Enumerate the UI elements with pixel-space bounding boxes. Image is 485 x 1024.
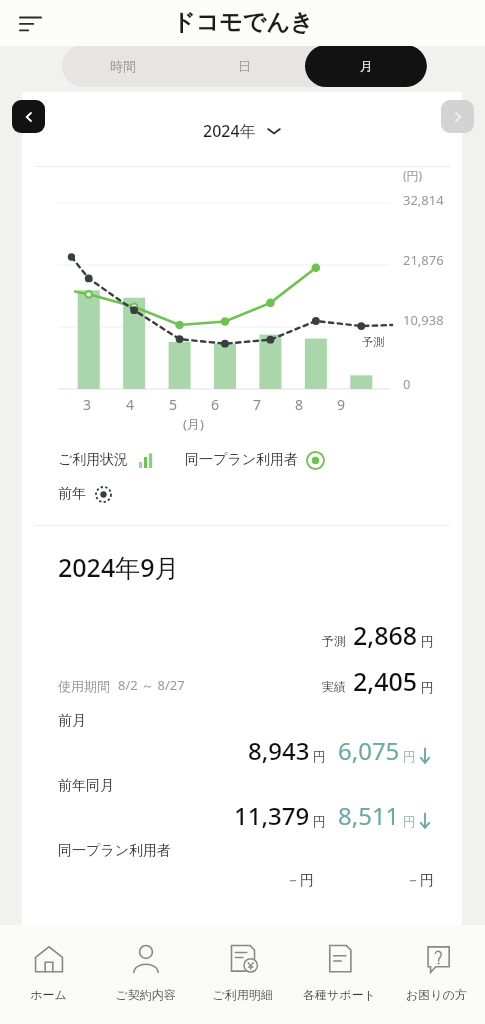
staticText: 4 xyxy=(126,395,135,414)
staticText: 前月 xyxy=(58,712,86,730)
staticText: －円 xyxy=(286,872,314,890)
staticText: －円 xyxy=(406,872,434,890)
staticText: 円 xyxy=(313,748,326,764)
button[interactable]: ご利用明細 xyxy=(194,925,291,1024)
staticText: 9 xyxy=(337,395,346,414)
button[interactable]: 2024年 xyxy=(22,120,462,142)
button[interactable]: ご契約内容 xyxy=(97,925,194,1024)
staticText: 32,814 xyxy=(403,191,444,209)
staticText: 3 xyxy=(83,395,92,414)
button[interactable]: 月 xyxy=(305,45,427,87)
staticText: 予測 xyxy=(362,335,384,349)
staticText: 8,943 xyxy=(248,734,310,767)
button[interactable]: 日 xyxy=(183,45,305,87)
staticText: 5 xyxy=(169,395,178,414)
staticText: 円 xyxy=(403,748,416,764)
staticText: ホーム xyxy=(30,987,67,1002)
staticText: 円 xyxy=(313,813,326,829)
staticText: 実績 xyxy=(322,679,346,694)
staticText: 円 xyxy=(403,813,416,829)
staticText: 時間 xyxy=(110,58,136,74)
staticText: ご契約内容 xyxy=(115,987,176,1002)
staticText: 8,511 xyxy=(338,799,400,832)
staticText: 6,075 xyxy=(338,734,400,767)
staticText: 同一プラン利用者 xyxy=(185,451,298,469)
staticText: 2,405 xyxy=(353,664,418,698)
staticText: 日 xyxy=(238,58,251,74)
staticText: 7 xyxy=(253,395,262,414)
staticText: (月) xyxy=(183,415,204,433)
staticText: 使用期間 xyxy=(58,678,110,694)
staticText: ドコモでんき xyxy=(172,8,314,37)
button[interactable]: 前年へ xyxy=(12,100,45,133)
staticText: 前年 xyxy=(58,485,86,503)
staticText: 8 xyxy=(295,395,304,414)
staticText: 各種サポート xyxy=(303,987,376,1002)
staticText: 2024年9月 xyxy=(58,550,180,584)
staticText: 前年同月 xyxy=(58,777,114,795)
staticText: 11,379 xyxy=(234,799,310,832)
button[interactable]: メニュー xyxy=(14,7,46,39)
staticText: 2024年 xyxy=(203,120,256,142)
staticText: ご利用明細 xyxy=(212,987,273,1002)
button[interactable]: ホーム xyxy=(0,925,97,1024)
staticText: 円 xyxy=(421,679,434,695)
staticText: ご利用状況 xyxy=(58,451,129,469)
button[interactable]: お困りの方 xyxy=(388,925,485,1024)
staticText: 月 xyxy=(360,58,373,74)
staticText: 10,938 xyxy=(403,311,444,329)
staticText: 予測 xyxy=(322,633,346,648)
staticText: お困りの方 xyxy=(406,987,467,1002)
staticText: 0 xyxy=(403,375,411,393)
staticText: 同一プラン利用者 xyxy=(58,842,171,860)
staticText: 21,876 xyxy=(403,251,444,269)
button[interactable]: 時間 xyxy=(62,45,183,87)
button[interactable]: 翌年へ xyxy=(441,100,474,133)
button[interactable]: 各種サポート xyxy=(291,925,388,1024)
staticText: 8/2 ～ 8/27 xyxy=(118,676,185,694)
staticText: 円 xyxy=(421,633,434,649)
staticText: 2,868 xyxy=(353,618,418,652)
staticText: 6 xyxy=(211,395,220,414)
staticText: (円) xyxy=(403,167,423,183)
